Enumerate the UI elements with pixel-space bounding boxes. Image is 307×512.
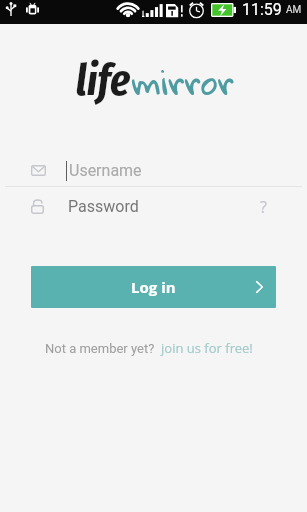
staticText: ? [260,196,267,218]
staticText: Not a member yet? [45,341,155,356]
other: Email [31,165,46,176]
staticText: Log in [131,277,176,297]
button[interactable]: Log in [31,266,276,308]
other: Password [31,199,44,214]
staticText: Password [68,197,139,216]
button[interactable]: Password [0,191,307,222]
button[interactable]: join us for free! [161,339,253,357]
staticText: AM [286,4,302,16]
staticText: mirror [132,49,234,114]
staticText: life [76,54,131,107]
staticText: join us for free! [161,339,253,357]
staticText: Username [69,161,142,180]
button[interactable]: Email [0,155,307,186]
staticText: 11:59 [242,0,282,19]
